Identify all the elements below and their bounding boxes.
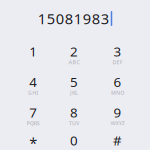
staticText: WXYZ <box>110 120 125 127</box>
button[interactable]: 5 <box>54 71 94 97</box>
staticText: 15081983 <box>38 9 109 28</box>
staticText: 5 <box>70 73 78 91</box>
staticText: 7 <box>29 103 37 121</box>
staticText: * <box>29 133 37 150</box>
button[interactable]: 0 <box>54 130 94 150</box>
staticText: PQRS <box>27 120 40 127</box>
staticText: 4 <box>29 73 37 91</box>
staticText: 9 <box>114 103 122 121</box>
button[interactable]: 8 <box>54 102 94 128</box>
staticText: 2 <box>70 42 78 60</box>
staticText: 6 <box>114 73 122 91</box>
button[interactable]: 1 <box>13 41 53 67</box>
button[interactable]: star <box>13 130 53 150</box>
button[interactable]: 4 <box>13 71 53 97</box>
button[interactable]: 6 <box>98 71 138 97</box>
button[interactable]: 9 <box>98 102 138 128</box>
button[interactable]: 7 <box>13 102 53 128</box>
button[interactable]: pound <box>98 130 138 150</box>
staticText: 1 <box>29 42 37 60</box>
staticText: + <box>72 148 75 150</box>
staticText: ABC <box>68 59 80 66</box>
staticText: JKL <box>70 89 78 96</box>
staticText: 0 <box>70 131 78 149</box>
staticText: 3 <box>114 42 122 60</box>
staticText: TUV <box>69 120 79 127</box>
staticText: DEF <box>112 59 123 66</box>
staticText: MNO <box>111 89 124 96</box>
button[interactable]: 3 <box>98 41 138 67</box>
staticText: GHI <box>28 89 38 96</box>
button[interactable]: 2 <box>54 41 94 67</box>
staticText: 8 <box>70 103 78 121</box>
staticText: # <box>113 131 122 149</box>
